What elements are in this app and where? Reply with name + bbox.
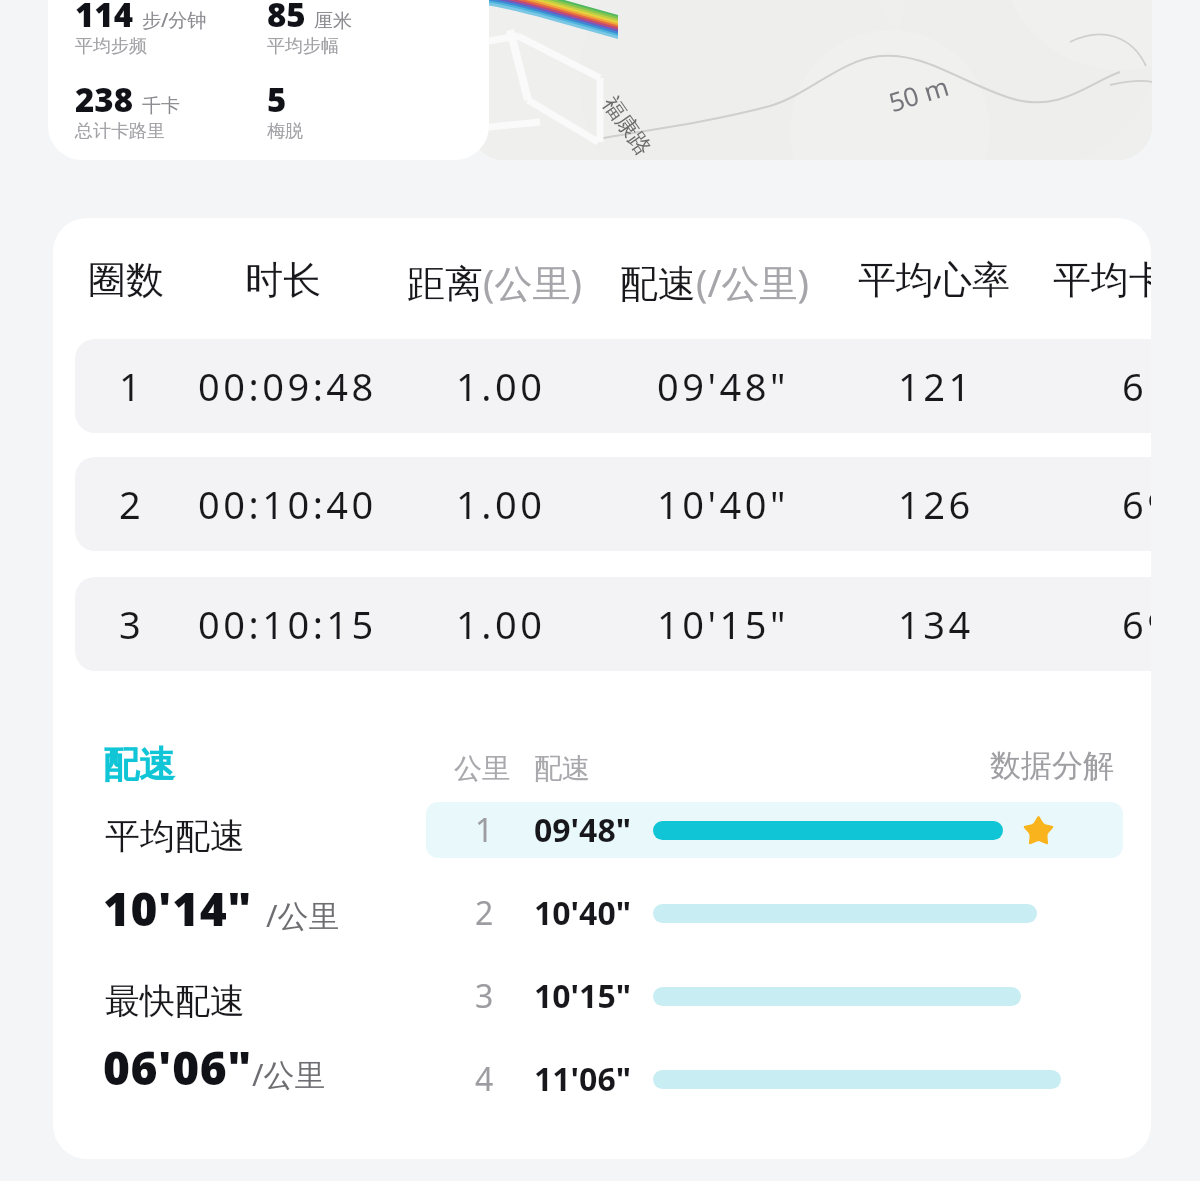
- staticText: 配速: [620, 260, 696, 308]
- staticText: 2: [475, 891, 494, 935]
- staticText: 距离: [407, 260, 483, 308]
- staticText: 1.00: [456, 598, 546, 650]
- staticText: 00:10:40: [198, 478, 377, 530]
- staticText: 00:09:48: [198, 360, 377, 412]
- staticText: 福康路: [597, 91, 657, 160]
- button[interactable]: 114: [48, 0, 489, 160]
- staticText: 1.00: [456, 478, 546, 530]
- staticText: 10'14": [103, 877, 252, 940]
- staticText: 5: [267, 77, 287, 122]
- staticText: 平均步频: [75, 35, 147, 58]
- staticText: 总计卡路里: [75, 120, 165, 143]
- staticText: 时长: [245, 256, 321, 304]
- staticText: 11'06": [534, 1057, 632, 1101]
- staticText: 69: [1122, 598, 1151, 650]
- button[interactable]: 2: [426, 885, 1123, 941]
- staticText: /公里: [252, 1053, 326, 1095]
- staticText: 厘米: [314, 9, 352, 33]
- staticText: 4: [475, 1057, 494, 1101]
- staticText: 69: [1122, 478, 1151, 530]
- staticText: 梅脱: [267, 120, 303, 143]
- staticText: 09'48": [657, 360, 789, 412]
- staticText: 09'48": [534, 808, 632, 852]
- staticText: 配速: [103, 742, 175, 787]
- staticText: 121: [898, 360, 974, 412]
- button[interactable]: 3: [75, 577, 1151, 671]
- staticText: 公里: [454, 751, 510, 786]
- staticText: /公里: [266, 894, 340, 936]
- staticText: 最快配速: [105, 979, 245, 1023]
- staticText: 千卡: [142, 94, 180, 118]
- staticText: 238: [75, 77, 134, 122]
- staticText: 10'15": [657, 598, 789, 650]
- staticText: 数据分解: [990, 746, 1114, 785]
- staticText: 00:10:15: [198, 598, 377, 650]
- staticText: (公里): [483, 256, 582, 308]
- button[interactable]: 4: [426, 1051, 1123, 1107]
- button[interactable]: 1: [75, 339, 1151, 433]
- staticText: 114: [75, 0, 134, 37]
- staticText: 10'40": [657, 478, 789, 530]
- staticText: 06'06": [103, 1036, 252, 1099]
- button[interactable]: 2: [75, 457, 1151, 551]
- staticText: 126: [898, 478, 974, 530]
- button[interactable]: 3: [426, 968, 1123, 1024]
- staticText: 3: [119, 598, 145, 650]
- staticText: (/公里): [696, 256, 809, 308]
- staticText: 3: [475, 974, 494, 1018]
- staticText: 6: [1122, 360, 1148, 412]
- staticText: 平均步幅: [267, 35, 339, 58]
- button[interactable]: 1: [426, 802, 1123, 858]
- staticText: 平均心率: [858, 256, 1010, 304]
- staticText: 2: [119, 478, 145, 530]
- staticText: 平均卡: [1053, 256, 1151, 304]
- staticText: 10'15": [534, 974, 632, 1018]
- staticText: 1: [475, 808, 494, 852]
- staticText: 10'40": [534, 891, 632, 935]
- staticText: 配速: [534, 751, 590, 786]
- staticText: 圈数: [88, 256, 164, 304]
- staticText: 1: [119, 360, 145, 412]
- staticText: 步/分钟: [142, 7, 207, 33]
- button[interactable]: Route map: [470, 0, 1152, 160]
- staticText: 85: [267, 0, 306, 37]
- staticText: 134: [898, 598, 974, 650]
- staticText: 1.00: [456, 360, 546, 412]
- button[interactable]: 数据分解: [982, 742, 1114, 788]
- staticText: 50 m: [884, 68, 953, 119]
- staticText: 平均配速: [105, 814, 245, 858]
